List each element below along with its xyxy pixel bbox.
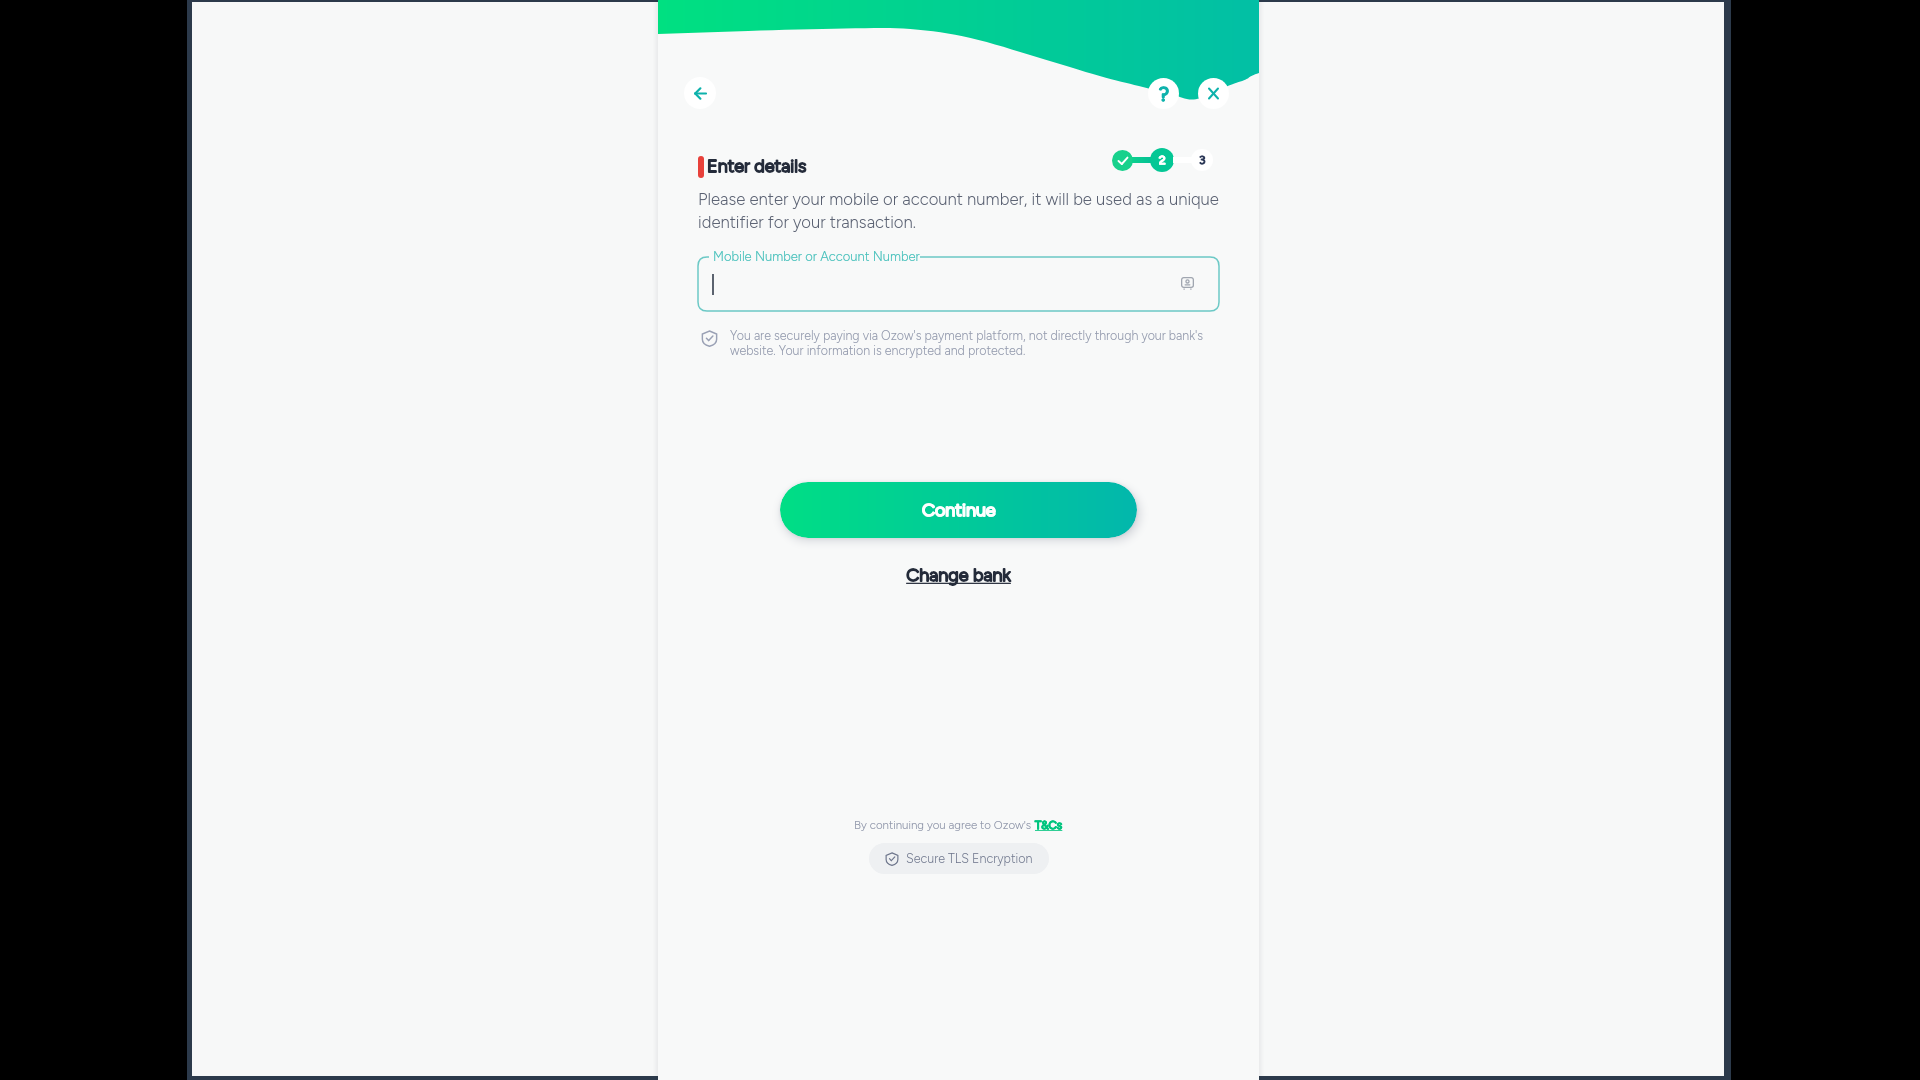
button[interactable]: Change bank: [888, 563, 1029, 587]
staticText: 2: [1159, 153, 1166, 167]
staticText: You are securely paying via Ozow's payme…: [730, 328, 1212, 358]
button[interactable]: Help: [1148, 78, 1179, 109]
staticText: Enter details: [707, 155, 807, 177]
staticText: T&Cs: [1035, 818, 1063, 832]
staticText: 3: [1199, 153, 1206, 167]
staticText: Mobile Number or Account Number: [713, 249, 920, 265]
staticText: 3: [1199, 153, 1206, 167]
staticText: Change bank: [906, 564, 1011, 586]
button[interactable]: Close: [1198, 78, 1229, 109]
staticText: Enter details: [707, 155, 807, 177]
button[interactable]: Back: [684, 77, 716, 109]
button[interactable]: Secure TLS Encryption: [869, 843, 1049, 874]
staticText: By continuing you agree to Ozow's: [854, 818, 1035, 832]
staticText: ?: [1159, 82, 1169, 106]
button[interactable]: T&Cs: [1035, 818, 1063, 832]
staticText: ?: [1159, 82, 1169, 106]
button[interactable]: Continue: [780, 482, 1137, 538]
staticText: Change bank: [906, 564, 1011, 586]
staticText: T&Cs: [1035, 818, 1063, 832]
staticText: Continue: [922, 499, 996, 521]
button[interactable]: [698, 257, 1219, 311]
staticText: Secure TLS Encryption: [906, 851, 1033, 866]
staticText: 2: [1159, 153, 1166, 167]
staticText: Continue: [922, 499, 996, 521]
staticText: Please enter your mobile or account numb…: [698, 189, 1222, 232]
